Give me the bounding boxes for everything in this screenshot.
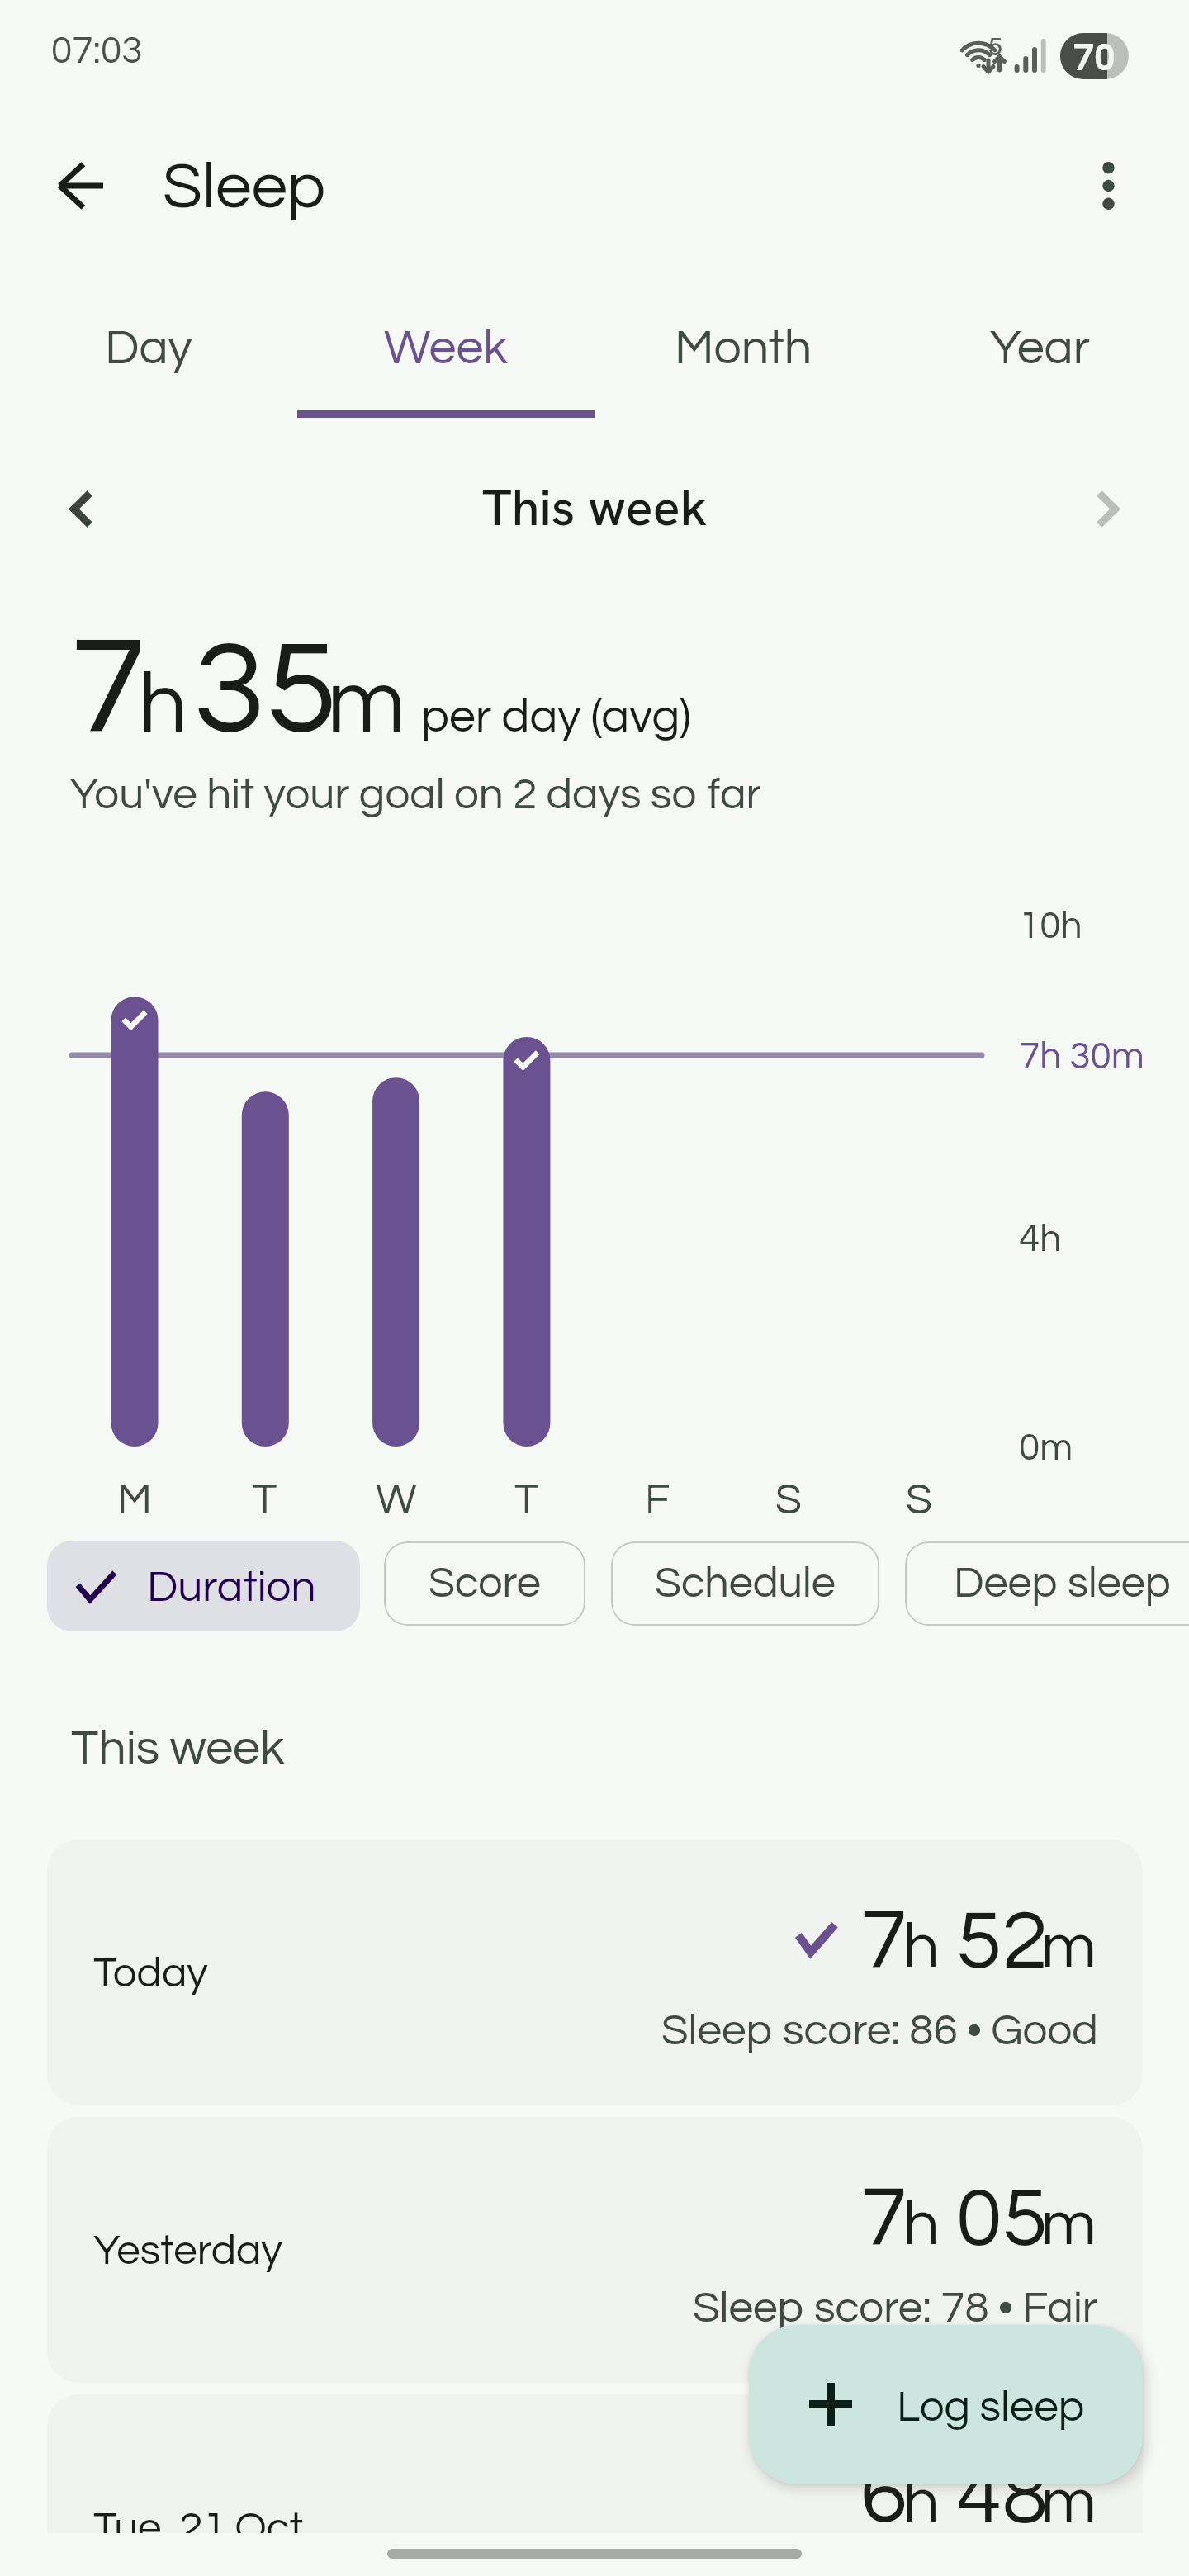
staticText: Yesterday [93,2229,282,2273]
staticText: m [1041,1915,1097,1980]
staticText: 7 [70,618,146,760]
staticText: Sleep score: 78 • Fair [693,2286,1098,2332]
staticText: Score [429,1561,541,1606]
button[interactable]: Schedule [611,1541,879,1626]
staticText: You've hit your goal on 2 days so far [70,773,761,818]
button[interactable]: Deep sleep [905,1541,1189,1626]
staticText: Schedule [655,1561,836,1606]
staticText: 48 [956,2454,1049,2540]
button[interactable]: Week [297,307,594,418]
button[interactable]: Yesterday [47,2117,1143,2383]
staticText: 7 [860,1897,907,1985]
staticText: Duration [147,1565,316,1611]
staticText: 5 [988,31,1002,63]
button[interactable]: Back [26,131,135,240]
staticText: 52 [956,1899,1049,1985]
staticText: per day (avg) [421,693,691,741]
staticText: m [1041,2192,1097,2257]
staticText: h [903,1915,940,1980]
staticText: 35 [193,624,338,760]
button[interactable]: Today [47,1840,1143,2105]
staticText: 0m [1019,1428,1073,1467]
staticText: 05 [956,2176,1049,2262]
staticText: 70 [1073,33,1116,79]
staticText: This week [482,475,708,540]
button[interactable]: Log sleep [749,2325,1143,2484]
staticText: W [376,1478,417,1522]
button[interactable]: Month [594,307,892,418]
staticText: S [906,1478,932,1522]
staticText: S [775,1478,802,1522]
staticText: 7 [860,2175,907,2262]
staticText: 7h 30m [1019,1037,1144,1076]
button[interactable]: Day [0,307,297,418]
button[interactable]: Duration [47,1541,360,1631]
button[interactable]: Score [384,1541,585,1626]
staticText: Day [105,324,192,374]
staticText: Tue, 21 Oct [93,2507,304,2550]
staticText: Sleep [163,154,326,220]
staticText: 10h [1019,907,1082,945]
staticText: m [327,657,406,751]
staticText: h [903,2192,940,2257]
button[interactable]: Year [892,307,1189,418]
staticText: This week [71,1724,285,1774]
staticText: h [903,2469,940,2535]
staticText: h [139,661,187,750]
button[interactable]: Previous week [26,455,135,563]
staticText: Sleep score: 86 • Good [661,2009,1098,2054]
staticText: 07:03 [51,31,143,70]
staticText: F [645,1478,670,1522]
staticText: Deep sleep [954,1561,1171,1606]
staticText: T [253,1478,277,1522]
staticText: Year [990,324,1091,374]
staticText: Today [93,1952,208,1996]
button[interactable]: More options [1054,131,1163,240]
button[interactable]: Tue, 21 Oct [47,2394,1143,2576]
button[interactable]: Next week [1054,455,1163,563]
staticText: m [1041,2469,1097,2535]
staticText: 6 [860,2452,907,2540]
staticText: M [117,1478,152,1522]
staticText: Log sleep [897,2385,1085,2431]
staticText: T [514,1478,539,1522]
staticText: Week [384,324,508,374]
staticText: Month [675,324,812,374]
staticText: 4h [1019,1219,1062,1258]
